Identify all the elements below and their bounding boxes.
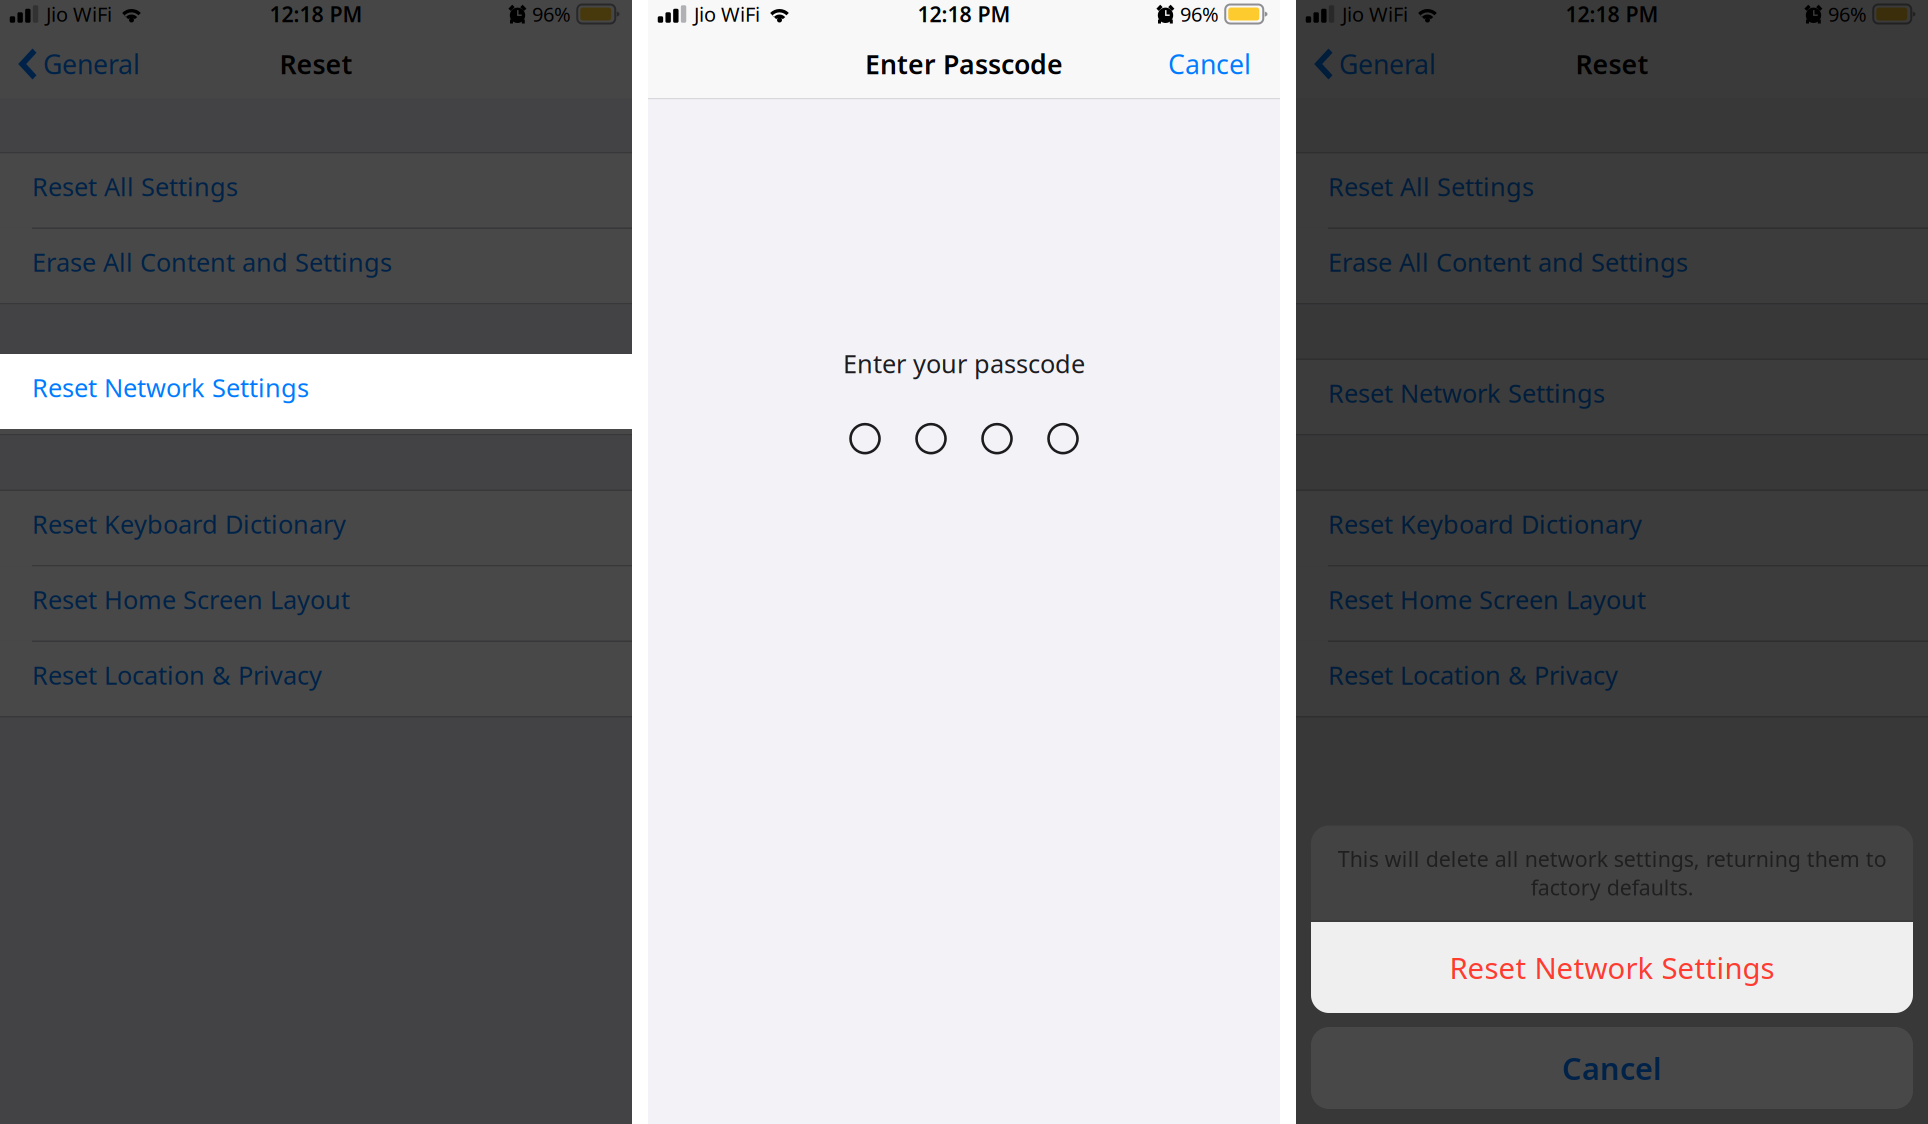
button[interactable]: Reset Home Screen Layout [0,566,632,640]
staticText: Reset Network Settings [32,371,309,404]
staticText: Reset [279,46,352,82]
button[interactable]: Reset All Settings [0,153,632,227]
staticText: Enter your passcode [843,346,1085,380]
staticText: Reset Location & Privacy [32,658,322,692]
staticText: 12:18 PM [1565,0,1658,28]
button[interactable]: Reset Home Screen Layout [1296,566,1928,640]
staticText: Reset All Settings [1328,170,1534,203]
staticText: Reset Network Settings [32,376,309,410]
button[interactable]: Reset Keyboard Dictionary [0,491,632,565]
staticText: Jio WiFi [694,1,760,27]
button[interactable]: Cancel [1311,1027,1913,1109]
button[interactable]: Erase All Content and Settings [1296,229,1928,303]
staticText: Reset All Settings [32,170,238,203]
staticText: Cancel [1168,46,1251,82]
button[interactable]: Reset All Settings [1296,153,1928,227]
button[interactable]: Reset Keyboard Dictionary [1296,491,1928,565]
staticText: Reset [1575,46,1648,82]
staticText: Reset Keyboard Dictionary [1328,507,1642,541]
button[interactable]: Reset Network Settings [1311,922,1913,1013]
staticText: 96% [532,1,571,27]
staticText: Erase All Content and Settings [32,245,392,279]
button[interactable]: Reset Network Settings [0,354,632,429]
staticText: Erase All Content and Settings [1328,245,1688,279]
button[interactable]: General [0,40,152,98]
button[interactable]: Reset Network Settings [0,360,632,434]
button[interactable]: Cancel [1150,40,1280,98]
staticText: 96% [1180,1,1219,27]
staticText: Reset Home Screen Layout [32,583,350,616]
staticText: This will delete all network settings, r… [1337,845,1886,901]
button[interactable]: Reset Network Settings [1296,360,1928,434]
staticText: Jio WiFi [1342,1,1408,27]
staticText: 12:18 PM [917,0,1010,28]
staticText: Reset Keyboard Dictionary [32,507,346,541]
staticText: Reset Home Screen Layout [1328,583,1646,616]
staticText: 12:18 PM [269,0,362,28]
button[interactable]: Reset Location & Privacy [1296,642,1928,716]
button[interactable]: Erase All Content and Settings [0,229,632,303]
staticText: Jio WiFi [46,1,112,27]
staticText: General [1339,46,1436,82]
staticText: Cancel [1562,1048,1662,1088]
button[interactable]: Reset Location & Privacy [0,642,632,716]
staticText: Reset Location & Privacy [1328,658,1618,692]
staticText: Enter Passcode [865,46,1063,82]
staticText: General [43,46,140,82]
staticText: 96% [1828,1,1867,27]
staticText: Reset Network Settings [1449,948,1774,987]
staticText: Reset Network Settings [1328,376,1605,410]
button[interactable]: General [1296,40,1448,98]
